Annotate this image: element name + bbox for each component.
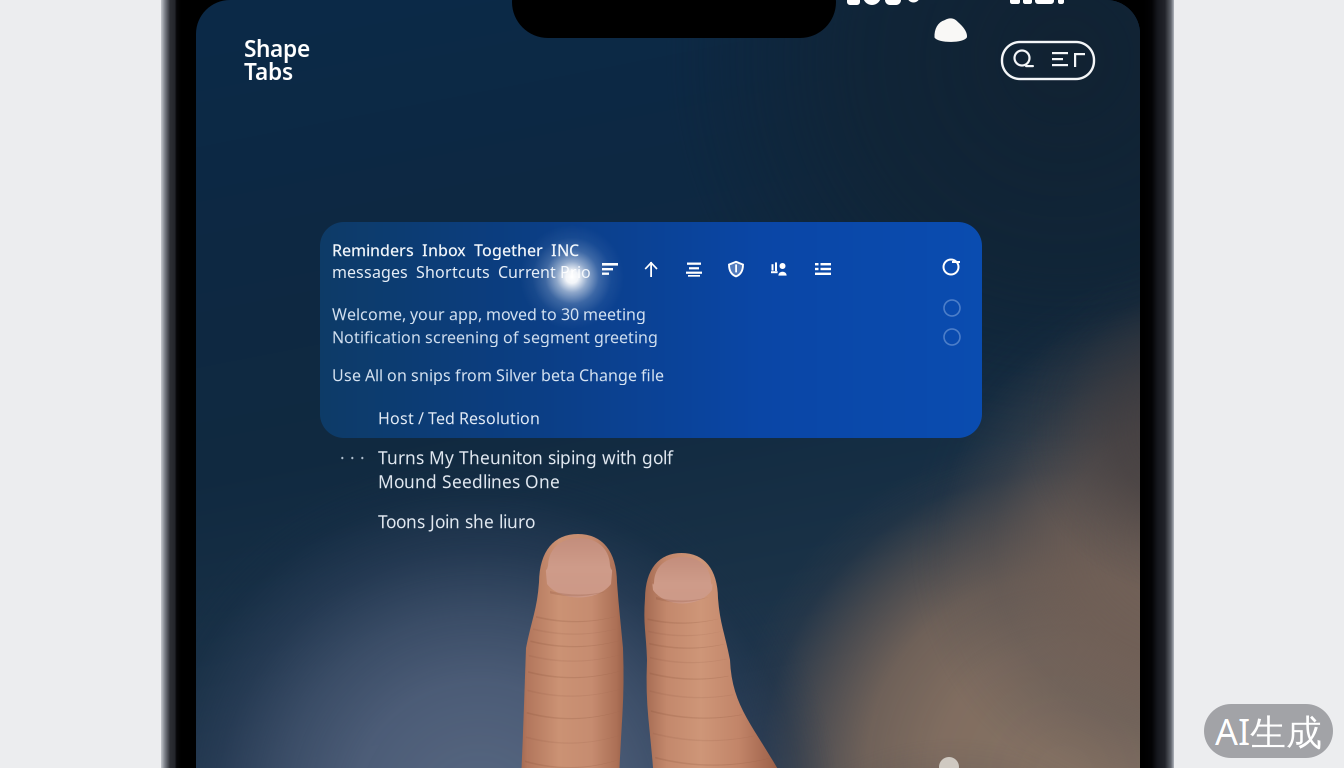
button[interactable]: Pin	[942, 259, 960, 277]
staticText: Reminders Inbox Together INC	[332, 239, 579, 261]
staticText: messages Shortcuts Current Prio	[332, 261, 591, 282]
button[interactable]: Tool 1	[602, 261, 618, 277]
button[interactable]: Tool 6	[815, 261, 831, 277]
staticText: Welcome, your app, moved to 30 meeting	[332, 303, 646, 325]
button[interactable]: Tool 3	[686, 261, 702, 277]
staticText: Toons Join she liuro	[378, 510, 535, 533]
button[interactable]: Search	[1002, 42, 1094, 79]
staticText: Notification screening of segment greeti…	[332, 326, 658, 348]
staticText: · · ·	[340, 446, 365, 469]
staticText: Host / Ted Resolution	[378, 407, 540, 429]
staticText: Mound Seedlines One	[378, 470, 560, 493]
button[interactable]: Tool 2	[643, 261, 659, 277]
staticText: Tabs	[244, 56, 293, 86]
staticText: Turns My Theuniton siping with golf	[378, 446, 673, 469]
staticText: Shape	[244, 33, 310, 63]
staticText: Use All on snips from Silver beta Change…	[332, 364, 664, 386]
staticText: AI生成	[1215, 707, 1322, 755]
button[interactable]: Tool 4	[728, 261, 744, 277]
button[interactable]: Tool 5	[771, 261, 787, 277]
